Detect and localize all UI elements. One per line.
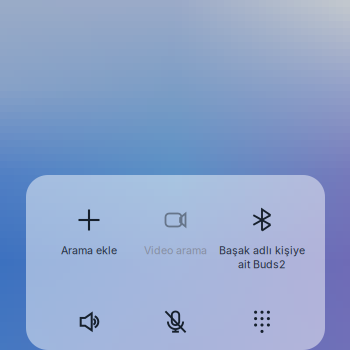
button[interactable]: Sesi kapat (132, 305, 219, 339)
button[interactable]: Arama ekle (46, 207, 132, 257)
staticText: ait Buds2 (238, 258, 286, 271)
button[interactable]: Başak adlı kişiye ait Buds2 (219, 207, 305, 271)
button[interactable]: Tuş takımı (219, 305, 305, 339)
button[interactable]: Video arama (132, 207, 219, 257)
staticText: Başak adlı kişiye (219, 244, 305, 257)
staticText: Arama ekle (61, 244, 117, 257)
button[interactable]: Hoparlör (46, 305, 132, 339)
staticText: Video arama (144, 244, 207, 257)
